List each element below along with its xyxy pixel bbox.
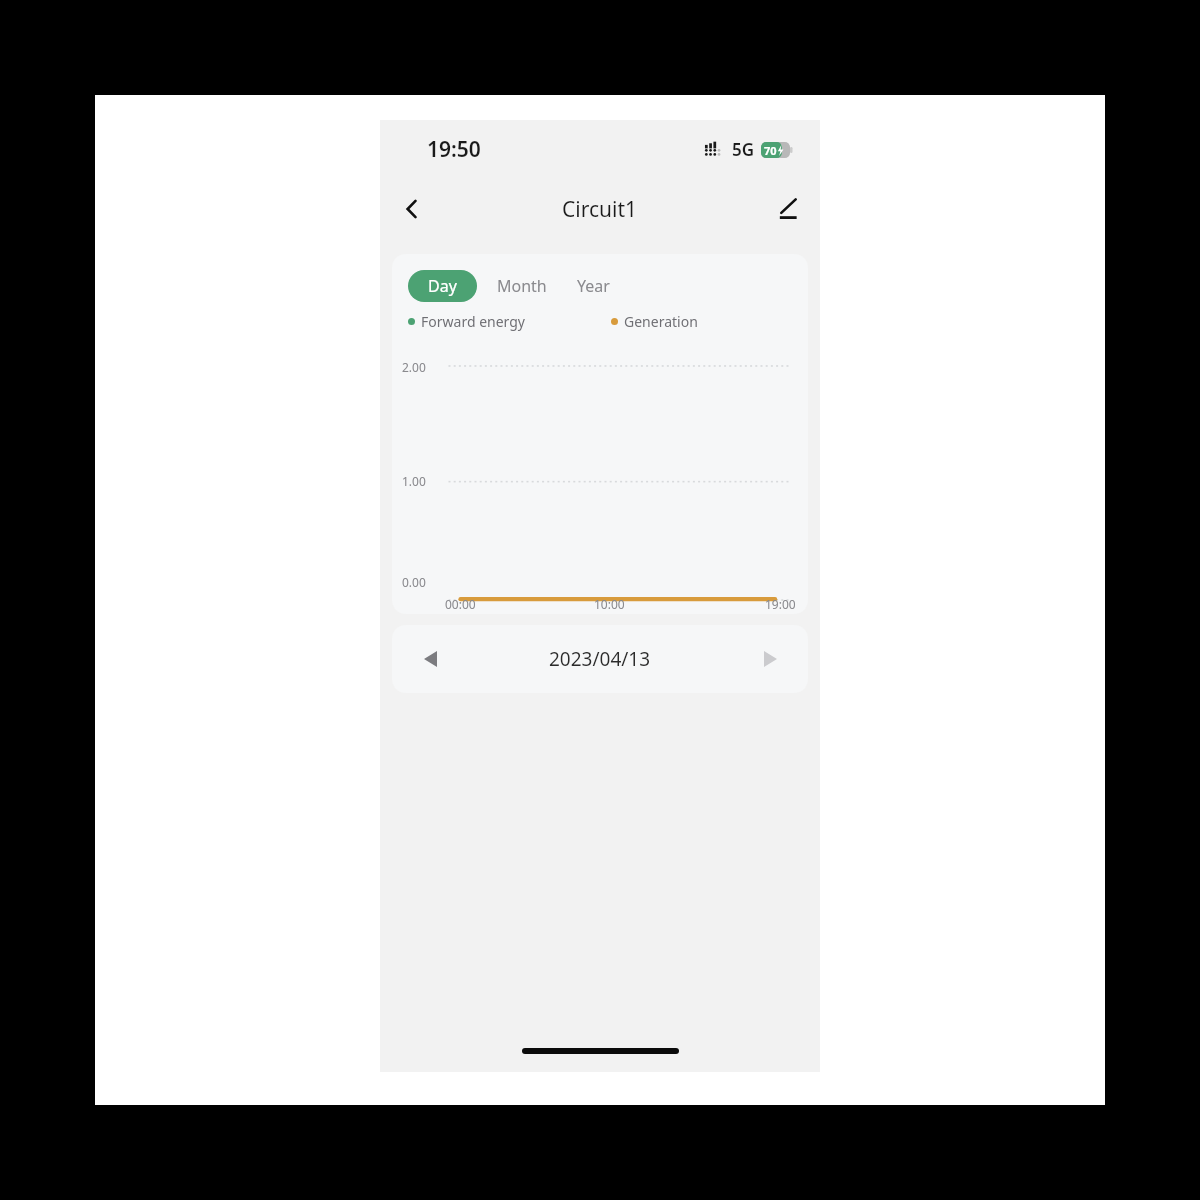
staticText: 19:00 (765, 596, 796, 612)
staticText: Month (497, 275, 547, 297)
staticText: Forward energy (421, 312, 525, 331)
staticText: 5G (732, 138, 755, 161)
button[interactable]: Back (388, 185, 436, 233)
staticText: Year (577, 275, 610, 297)
staticText: 1.00 (402, 473, 426, 489)
staticText: Day (428, 275, 457, 297)
staticText: 10:00 (594, 596, 625, 612)
staticText: 70 (764, 143, 777, 158)
staticText: Circuit1 (562, 195, 638, 224)
button[interactable]: Month (487, 270, 557, 302)
staticText: 2.00 (402, 359, 426, 375)
button[interactable]: Previous day (408, 637, 452, 681)
button[interactable]: Day (408, 270, 477, 302)
staticText: 19:50 (427, 135, 481, 164)
staticText: 2023/04/13 (549, 646, 651, 672)
button[interactable]: Next day (748, 637, 792, 681)
staticText: 0.00 (402, 574, 426, 590)
staticText: 00:00 (445, 596, 476, 612)
staticText: Generation (624, 312, 698, 331)
button[interactable]: Edit (764, 185, 812, 233)
button[interactable]: Year (567, 270, 620, 302)
